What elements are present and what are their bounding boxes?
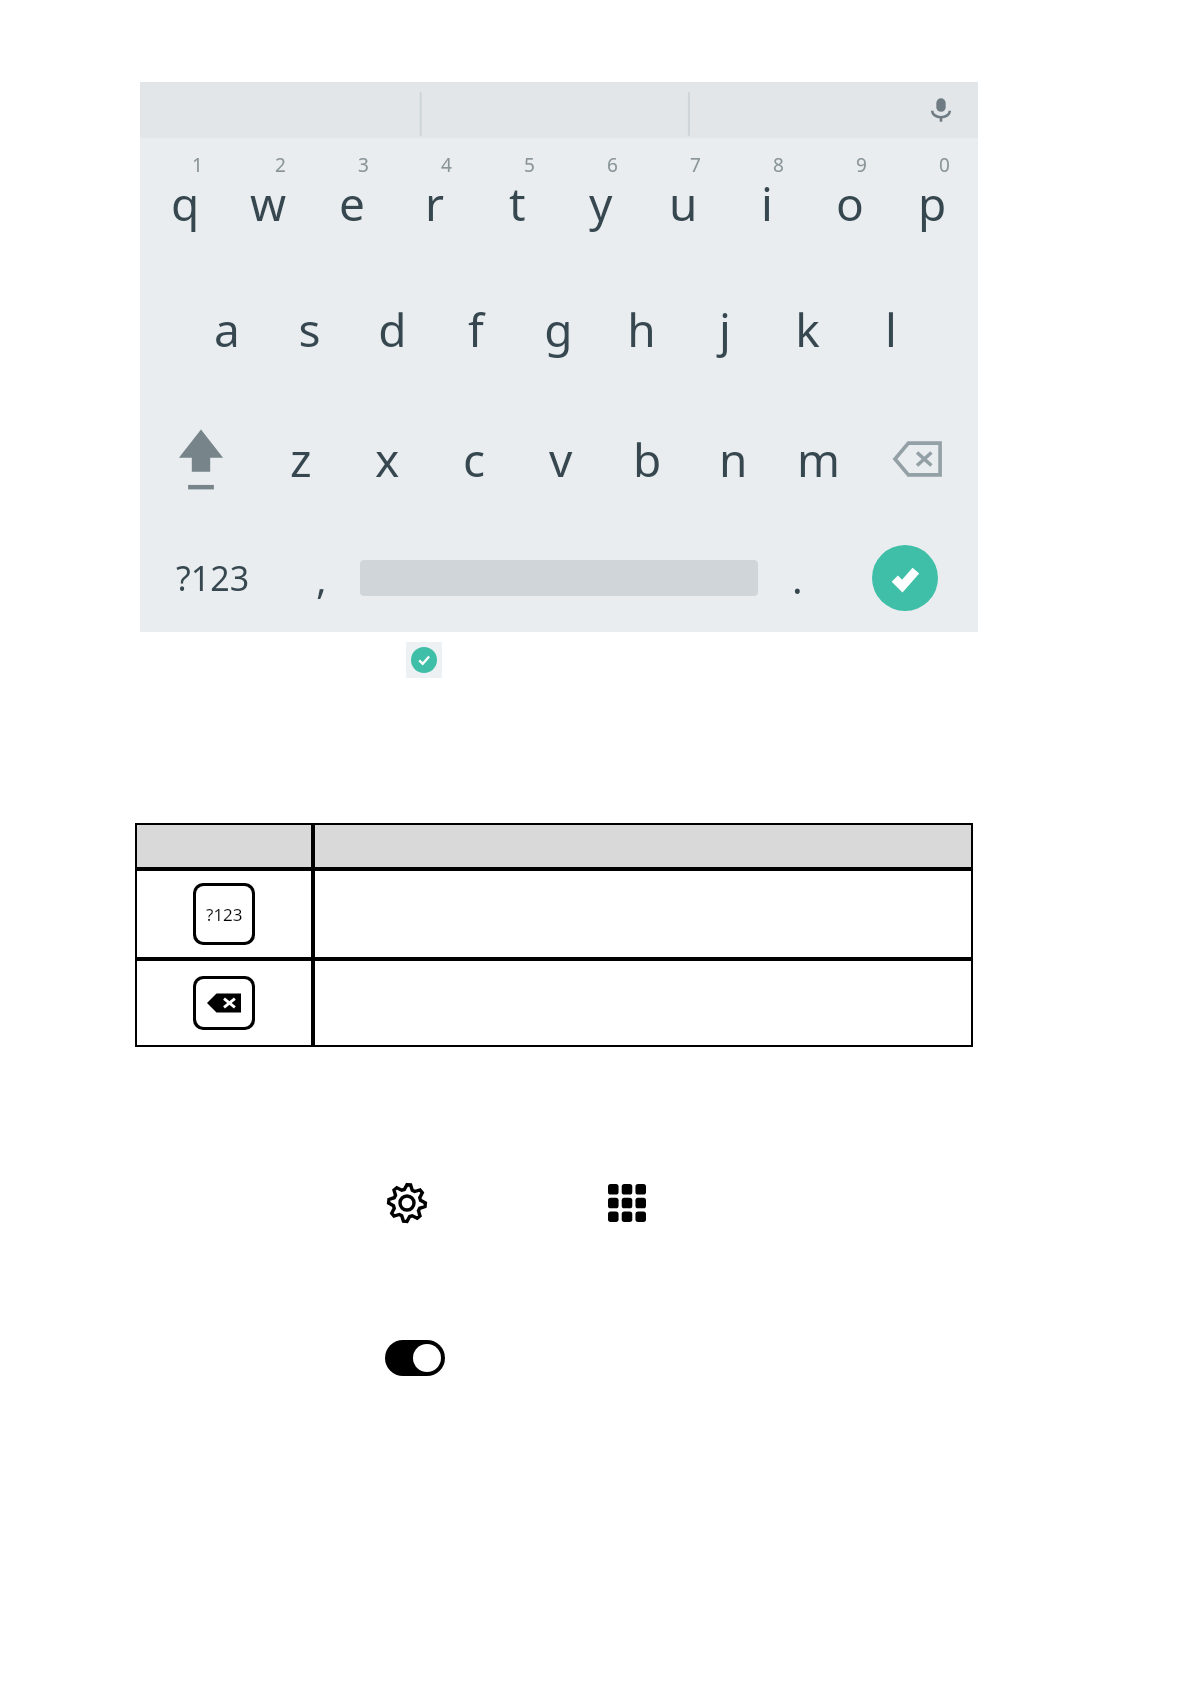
staticText: 6 bbox=[607, 152, 618, 178]
staticText: w bbox=[250, 172, 287, 235]
staticText: l bbox=[885, 298, 897, 361]
button[interactable]: Enter / confirm key bbox=[406, 642, 442, 678]
staticText: 2 bbox=[275, 152, 286, 178]
button[interactable]: Backspace bbox=[862, 394, 974, 524]
staticText: 7 bbox=[690, 152, 701, 178]
button[interactable]: s bbox=[268, 264, 351, 394]
button[interactable]: v bbox=[518, 394, 604, 524]
staticText: u bbox=[669, 172, 698, 235]
staticText: y bbox=[589, 172, 613, 235]
button[interactable]: 8 bbox=[725, 144, 808, 264]
staticText: f bbox=[468, 298, 484, 361]
button[interactable]: k bbox=[766, 264, 849, 394]
button[interactable]: 4 bbox=[393, 144, 476, 264]
staticText: v bbox=[549, 428, 573, 491]
button[interactable]: 5 bbox=[476, 144, 559, 264]
staticText: b bbox=[633, 428, 662, 491]
staticText: 1 bbox=[192, 152, 203, 178]
staticText: r bbox=[425, 172, 444, 235]
button[interactable] bbox=[196, 979, 252, 1027]
button[interactable]: z bbox=[257, 394, 344, 524]
staticText: 8 bbox=[773, 152, 784, 178]
staticText: a bbox=[214, 298, 240, 361]
staticText: g bbox=[544, 298, 573, 361]
staticText: h bbox=[627, 298, 656, 361]
button[interactable]: n bbox=[690, 394, 776, 524]
staticText: i bbox=[761, 172, 773, 235]
button[interactable]: Toggle on bbox=[384, 1338, 446, 1378]
button[interactable]: Shift bbox=[144, 394, 257, 524]
staticText: 0 bbox=[939, 152, 950, 178]
button[interactable]: l bbox=[849, 264, 932, 394]
button[interactable]: . bbox=[758, 524, 836, 632]
button[interactable]: j bbox=[683, 264, 766, 394]
staticText: 3 bbox=[358, 152, 369, 178]
staticText: m bbox=[797, 428, 841, 491]
button[interactable]: g bbox=[517, 264, 600, 394]
staticText: d bbox=[378, 298, 407, 361]
staticText: s bbox=[298, 298, 321, 361]
button[interactable]: Voice input bbox=[920, 89, 962, 131]
staticText: k bbox=[795, 298, 820, 361]
button[interactable]: 1 bbox=[144, 144, 227, 264]
button[interactable]: 0 bbox=[891, 144, 974, 264]
button[interactable]: 2 bbox=[227, 144, 310, 264]
button[interactable]: Enter bbox=[836, 524, 974, 632]
staticText: x bbox=[375, 428, 400, 491]
button[interactable]: d bbox=[351, 264, 434, 394]
button[interactable]: All apps bbox=[604, 1180, 650, 1226]
staticText: 5 bbox=[524, 152, 535, 178]
staticText: n bbox=[719, 428, 748, 491]
staticText: p bbox=[918, 172, 947, 235]
button[interactable]: a bbox=[186, 264, 268, 394]
staticText: e bbox=[339, 172, 365, 235]
button[interactable]: c bbox=[431, 394, 518, 524]
staticText: , bbox=[316, 551, 327, 605]
staticText: . bbox=[792, 551, 803, 605]
button[interactable]: x bbox=[344, 394, 431, 524]
staticText: t bbox=[509, 172, 526, 235]
button[interactable]: h bbox=[600, 264, 683, 394]
button[interactable]: ?123 bbox=[196, 886, 252, 942]
staticText: o bbox=[836, 172, 864, 235]
staticText: c bbox=[463, 428, 486, 491]
staticText: ?123 bbox=[176, 555, 250, 601]
button[interactable]: b bbox=[604, 394, 690, 524]
button[interactable]: 9 bbox=[808, 144, 891, 264]
button[interactable]: 7 bbox=[642, 144, 725, 264]
staticText: j bbox=[719, 298, 731, 361]
button[interactable]: m bbox=[776, 394, 862, 524]
staticText: z bbox=[290, 428, 312, 491]
button[interactable]: 3 bbox=[310, 144, 393, 264]
button[interactable]: f bbox=[434, 264, 517, 394]
button[interactable]: ?123 bbox=[144, 524, 282, 632]
staticText: q bbox=[171, 172, 200, 235]
staticText: ?123 bbox=[206, 903, 243, 926]
button[interactable]: , bbox=[282, 524, 360, 632]
button[interactable]: 6 bbox=[559, 144, 642, 264]
staticText: 4 bbox=[441, 152, 452, 178]
button[interactable]: Settings bbox=[384, 1180, 430, 1226]
staticText: 9 bbox=[856, 152, 867, 178]
